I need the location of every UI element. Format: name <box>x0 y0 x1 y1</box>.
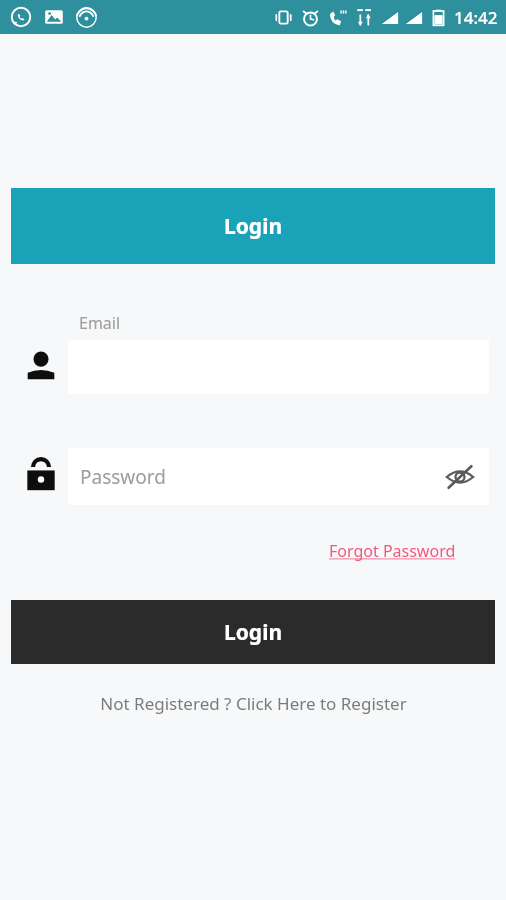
button[interactable]: Password <box>68 448 489 505</box>
other: Password lock <box>14 448 68 502</box>
button[interactable]: Login <box>11 600 495 664</box>
staticText: Not Registered ? Click Here to Register <box>100 692 407 715</box>
staticText: Password <box>80 464 166 490</box>
staticText: Login <box>224 618 283 647</box>
staticText: Login <box>224 212 283 241</box>
staticText: Email <box>79 312 121 334</box>
staticText: 14:42 <box>454 6 498 29</box>
button[interactable]: Login <box>11 188 495 264</box>
button[interactable]: Not Registered ? Click Here to Register <box>0 686 506 720</box>
other: User <box>14 340 68 394</box>
button[interactable]: Forgot Password <box>329 540 456 562</box>
staticText: Forgot Password <box>329 540 456 562</box>
button[interactable]: Show password <box>438 455 482 499</box>
